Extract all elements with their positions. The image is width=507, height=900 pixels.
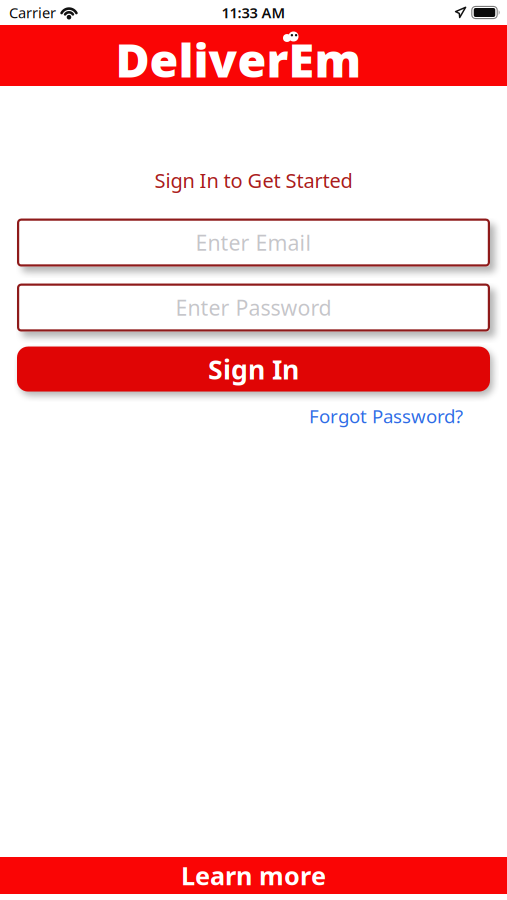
button[interactable]: Learn more (0, 857, 507, 894)
button[interactable]: Forgot Password? (309, 404, 463, 428)
staticText: Enter Email (195, 228, 311, 257)
staticText: Sign In to Get Started (154, 167, 352, 194)
staticText: Learn more (181, 859, 326, 892)
staticText: Sign In (208, 351, 299, 387)
button[interactable]: Enter Email (17, 219, 490, 267)
button[interactable]: Sign In (17, 347, 490, 392)
staticText: DeliverEm (115, 28, 361, 90)
staticText: Enter Password (175, 293, 331, 322)
staticText: Carrier (9, 3, 56, 22)
staticText: Forgot Password? (309, 404, 463, 428)
button[interactable]: Enter Password (17, 284, 490, 332)
staticText: 11:33 AM (221, 3, 285, 22)
